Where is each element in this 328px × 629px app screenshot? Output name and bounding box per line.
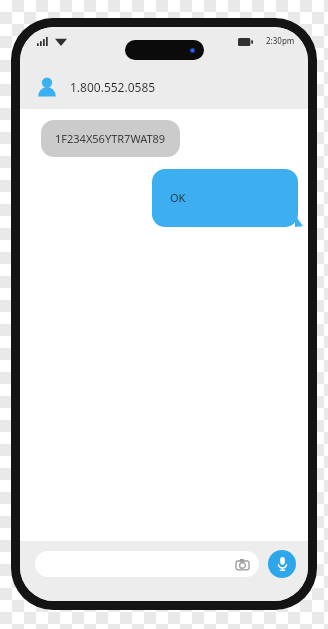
staticText: 1.800.552.0585: [70, 79, 156, 95]
staticText: 2:30pm: [266, 35, 295, 46]
button[interactable]: 1F234X56YTR7WAT89: [41, 120, 180, 157]
staticText: 1F234X56YTR7WAT89: [55, 131, 166, 146]
button[interactable]: Voice message: [268, 550, 296, 578]
button[interactable]: 1.800.552.0585: [20, 65, 308, 109]
button[interactable]: Message input: [35, 551, 259, 577]
button[interactable]: OK: [152, 169, 298, 227]
staticText: OK: [170, 190, 186, 205]
